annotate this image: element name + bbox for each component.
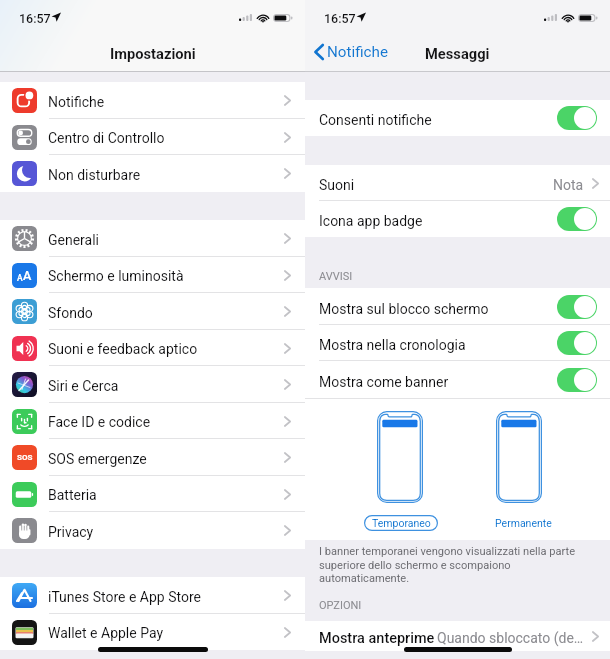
staticText: Mostra sul blocco schermo: [319, 301, 489, 317]
button[interactable]: Suoni: [305, 165, 610, 201]
staticText: Face ID e codice: [48, 414, 151, 430]
button[interactable]: Generali: [0, 220, 305, 257]
button[interactable]: Suoni e feedback aptico: [0, 330, 305, 366]
staticText: Mostra come banner: [319, 374, 449, 390]
staticText: iTunes Store e App Store: [48, 589, 201, 605]
button[interactable]: Sfondo: [0, 293, 305, 330]
button[interactable]: Centro di Controllo: [0, 119, 305, 155]
staticText: Temporaneo: [372, 517, 431, 529]
staticText: Suoni e feedback aptico: [48, 341, 198, 357]
staticText: 16:57: [19, 11, 51, 26]
staticText: SOS: [17, 453, 33, 462]
staticText: Mostra nella cronologia: [319, 337, 466, 353]
button[interactable]: A: [0, 257, 305, 293]
staticText: Icona app badge: [319, 213, 423, 229]
button[interactable]: Batteria: [0, 476, 305, 512]
button[interactable]: Privacy: [0, 512, 305, 549]
staticText: Batteria: [48, 487, 97, 503]
staticText: Sfondo: [48, 305, 93, 321]
button[interactable]: iTunes Store e App Store: [0, 577, 305, 614]
staticText: Consenti notifiche: [319, 112, 432, 128]
staticText: A: [17, 273, 23, 283]
button[interactable]: Temporaneo: [364, 515, 438, 531]
staticText: Generali: [48, 232, 100, 248]
staticText: Non disturbare: [48, 167, 141, 183]
button[interactable]: Notifiche: [311, 43, 388, 68]
button[interactable]: Face ID e codice: [0, 403, 305, 439]
button[interactable]: SOS: [0, 439, 305, 476]
staticText: Impostazioni: [110, 45, 196, 62]
button[interactable]: Attiva o disattiva: [557, 295, 597, 319]
staticText: I banner temporanei vengono visualizzati…: [319, 545, 588, 584]
staticText: Schermo e luminosità: [48, 268, 184, 284]
staticText: Notifiche: [48, 94, 105, 110]
staticText: Centro di Controllo: [48, 130, 165, 146]
button[interactable]: Attiva o disattiva: [557, 207, 597, 231]
button[interactable]: Mostra come banner: [305, 361, 610, 398]
button[interactable]: Attiva o disattiva: [557, 106, 597, 130]
staticText: Wallet e Apple Pay: [48, 625, 164, 641]
button[interactable]: Wallet e Apple Pay: [0, 614, 305, 650]
staticText: Messaggi: [425, 45, 490, 62]
staticText: Quando sbloccato (de…: [437, 630, 584, 646]
button[interactable]: Mostra anteprime: [305, 621, 610, 651]
button[interactable]: Icona app badge: [305, 201, 610, 237]
button[interactable]: Notifiche: [0, 82, 305, 119]
staticText: Mostra anteprime: [319, 630, 435, 647]
staticText: OPZIONI: [319, 599, 362, 612]
button[interactable]: Attiva o disattiva: [557, 368, 597, 392]
staticText: Suoni: [319, 177, 355, 193]
staticText: AVVISI: [319, 270, 353, 283]
button[interactable]: Attiva o disattiva: [557, 331, 597, 355]
staticText: Permanente: [495, 517, 552, 529]
staticText: 16:57: [324, 11, 356, 26]
button[interactable]: Consenti notifiche: [305, 100, 610, 136]
staticText: Siri e Cerca: [48, 378, 119, 394]
button[interactable]: Mostra nella cronologia: [305, 325, 610, 361]
button[interactable]: Mostra sul blocco schermo: [305, 288, 610, 325]
button[interactable]: Non disturbare: [0, 155, 305, 192]
staticText: A: [23, 268, 32, 283]
staticText: Privacy: [48, 524, 94, 540]
staticText: Nota: [553, 177, 584, 193]
button[interactable]: Siri e Cerca: [0, 366, 305, 403]
staticText: SOS emergenze: [48, 451, 147, 467]
staticText: Notifiche: [327, 43, 388, 61]
